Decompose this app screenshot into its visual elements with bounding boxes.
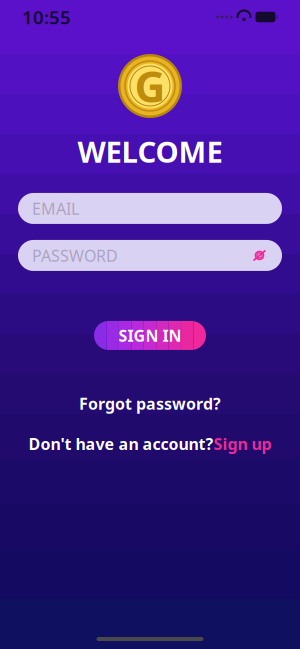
staticText: EMAIL — [32, 198, 79, 219]
staticText: SIGN IN — [118, 325, 181, 346]
staticText: PASSWORD — [32, 245, 118, 266]
button[interactable]: SIGN IN — [94, 321, 206, 350]
button[interactable]: PASSWORD — [18, 240, 282, 271]
button[interactable]: EMAIL — [18, 193, 282, 224]
button[interactable]: Sign up — [213, 430, 271, 457]
staticText: WELCOME — [77, 132, 222, 171]
staticText: 10:55 — [22, 5, 71, 29]
button[interactable]: Forgot password? — [73, 390, 227, 417]
staticText: Don't have an account? — [28, 433, 213, 454]
staticText: Sign up — [213, 433, 271, 454]
staticText: Forgot password? — [79, 393, 221, 414]
staticText: G — [134, 58, 165, 114]
